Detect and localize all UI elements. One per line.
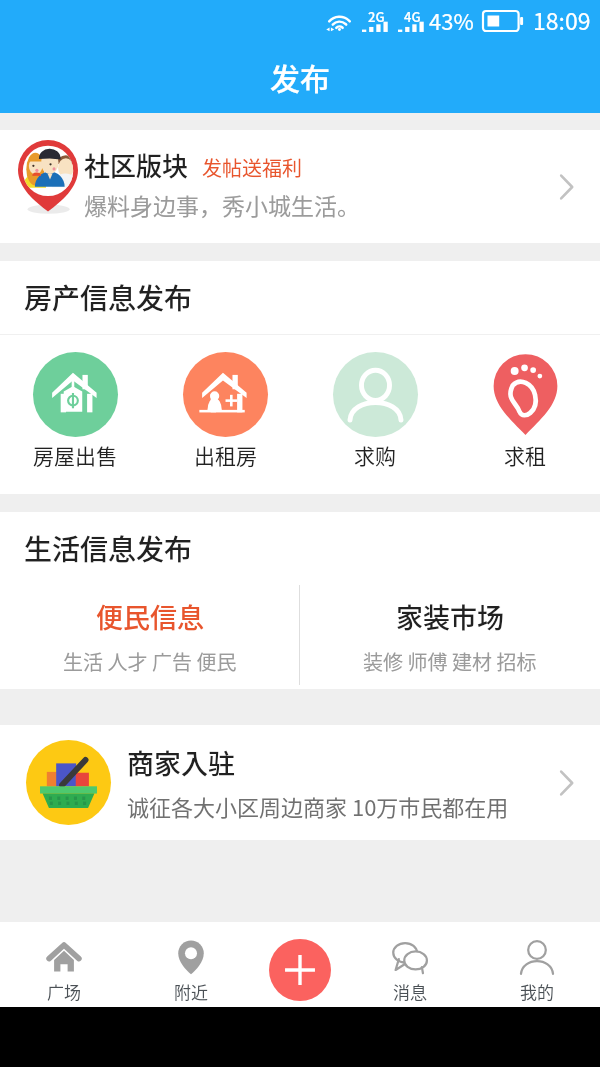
button[interactable]: 求购 — [300, 335, 450, 494]
staticText: 房屋出售 — [33, 440, 117, 470]
button[interactable]: 广场 — [0, 922, 127, 1007]
staticText: 便民信息 — [96, 597, 204, 636]
button[interactable]: Post — [269, 939, 331, 1001]
button[interactable]: 社区版块 — [0, 130, 600, 243]
staticText: 求租 — [504, 440, 546, 470]
button[interactable]: 家装市场 — [300, 585, 600, 689]
staticText: 爆料身边事，秀小城生活。 — [84, 188, 360, 221]
staticText: 发布 — [270, 55, 330, 98]
staticText: 房产信息发布 — [24, 277, 193, 318]
staticText: 43% — [429, 4, 474, 36]
staticText: 社区版块 — [84, 146, 189, 184]
staticText: 我的 — [520, 979, 554, 1004]
staticText: 2G — [368, 7, 385, 26]
button[interactable]: 便民信息 — [0, 585, 299, 689]
button[interactable]: 求租 — [450, 335, 600, 494]
staticText: 消息 — [393, 979, 427, 1004]
staticText: 诚征各大小区周边商家 10万市民都在用 — [127, 790, 509, 822]
staticText: 商家入驻 — [127, 743, 235, 782]
staticText: 广场 — [47, 979, 81, 1004]
staticText: 生活信息发布 — [24, 528, 193, 569]
staticText: 出租房 — [194, 440, 257, 470]
staticText: 装修 师傅 建材 招标 — [363, 647, 537, 676]
staticText: 生活 人才 广告 便民 — [63, 647, 237, 676]
staticText: 家装市场 — [396, 597, 504, 636]
staticText: 附近 — [174, 979, 208, 1004]
button[interactable]: 商家入驻 — [0, 725, 600, 840]
staticText: 18:09 — [533, 3, 591, 36]
button[interactable]: 我的 — [473, 922, 600, 1007]
staticText: 发帖送福利 — [202, 153, 302, 182]
staticText: 求购 — [354, 440, 396, 470]
staticText: 4G — [404, 7, 421, 26]
button[interactable]: 附近 — [127, 922, 254, 1007]
button[interactable]: 房屋出售 — [0, 335, 150, 494]
button[interactable]: 出租房 — [150, 335, 300, 494]
button[interactable]: 消息 — [346, 922, 473, 1007]
